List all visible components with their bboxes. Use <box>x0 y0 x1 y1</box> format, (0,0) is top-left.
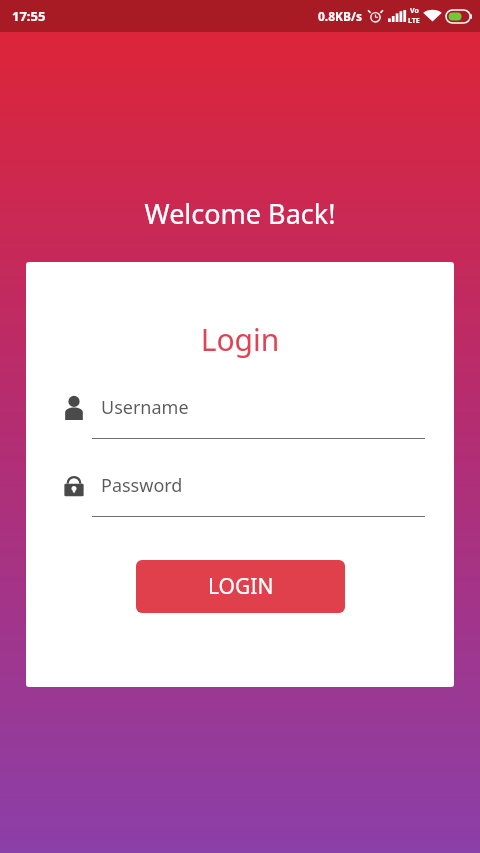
button[interactable]: Password <box>26 466 454 517</box>
button[interactable]: LOGIN <box>136 560 345 613</box>
other: Username <box>61 394 87 420</box>
staticText: 17:55 <box>12 7 46 25</box>
other: Password <box>61 472 87 498</box>
button[interactable]: Username <box>26 388 454 439</box>
staticText: Password <box>101 473 183 498</box>
staticText: Login <box>26 319 454 360</box>
staticText: Vo <box>410 6 419 16</box>
staticText: LOGIN <box>208 572 274 601</box>
staticText: 0.8KB/s <box>318 8 363 24</box>
staticText: LTE <box>408 16 420 26</box>
staticText: Username <box>101 395 189 420</box>
staticText: Welcome Back! <box>0 195 480 232</box>
